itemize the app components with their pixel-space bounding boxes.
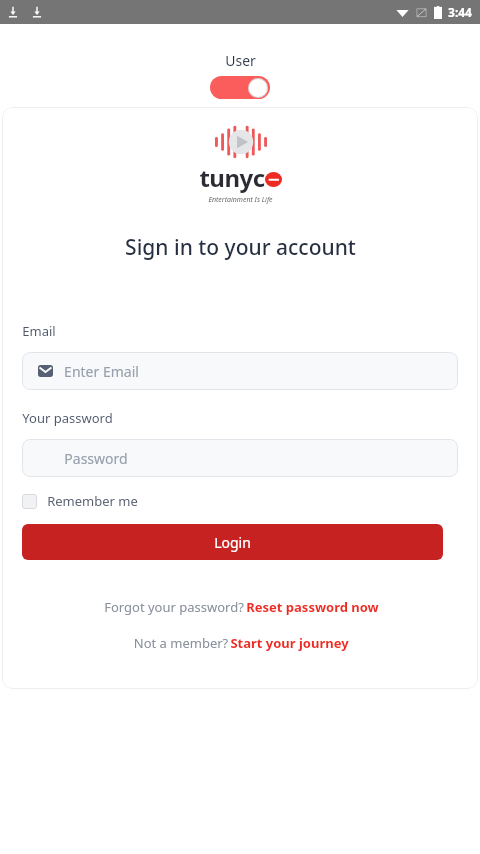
staticText: tunyc bbox=[199, 161, 265, 194]
staticText: Login bbox=[214, 533, 251, 552]
staticText: Password bbox=[64, 449, 128, 468]
button[interactable]: Password bbox=[22, 439, 458, 477]
button[interactable]: Enter Email bbox=[22, 352, 458, 390]
staticText: Entertainment Is Life bbox=[208, 195, 273, 205]
staticText: Remember me bbox=[47, 492, 138, 510]
staticText: Reset password now bbox=[246, 598, 379, 616]
button[interactable]: Forgot your password? bbox=[102, 598, 379, 616]
staticText: Not a member? bbox=[132, 634, 230, 652]
staticText: Email bbox=[22, 322, 56, 340]
staticText: Your password bbox=[22, 409, 113, 427]
staticText: Forgot your password? bbox=[102, 598, 246, 616]
staticText: Enter Email bbox=[64, 362, 139, 381]
staticText: 3:44 bbox=[448, 4, 472, 20]
button[interactable]: Not a member? bbox=[132, 634, 349, 652]
staticText: Start your journey bbox=[230, 634, 349, 652]
button[interactable]: Login bbox=[22, 524, 443, 560]
button[interactable]: Remember me bbox=[22, 492, 138, 510]
staticText: Sign in to your account bbox=[125, 233, 356, 262]
staticText: User bbox=[225, 51, 256, 70]
button[interactable]: Toggle user type bbox=[210, 76, 270, 99]
